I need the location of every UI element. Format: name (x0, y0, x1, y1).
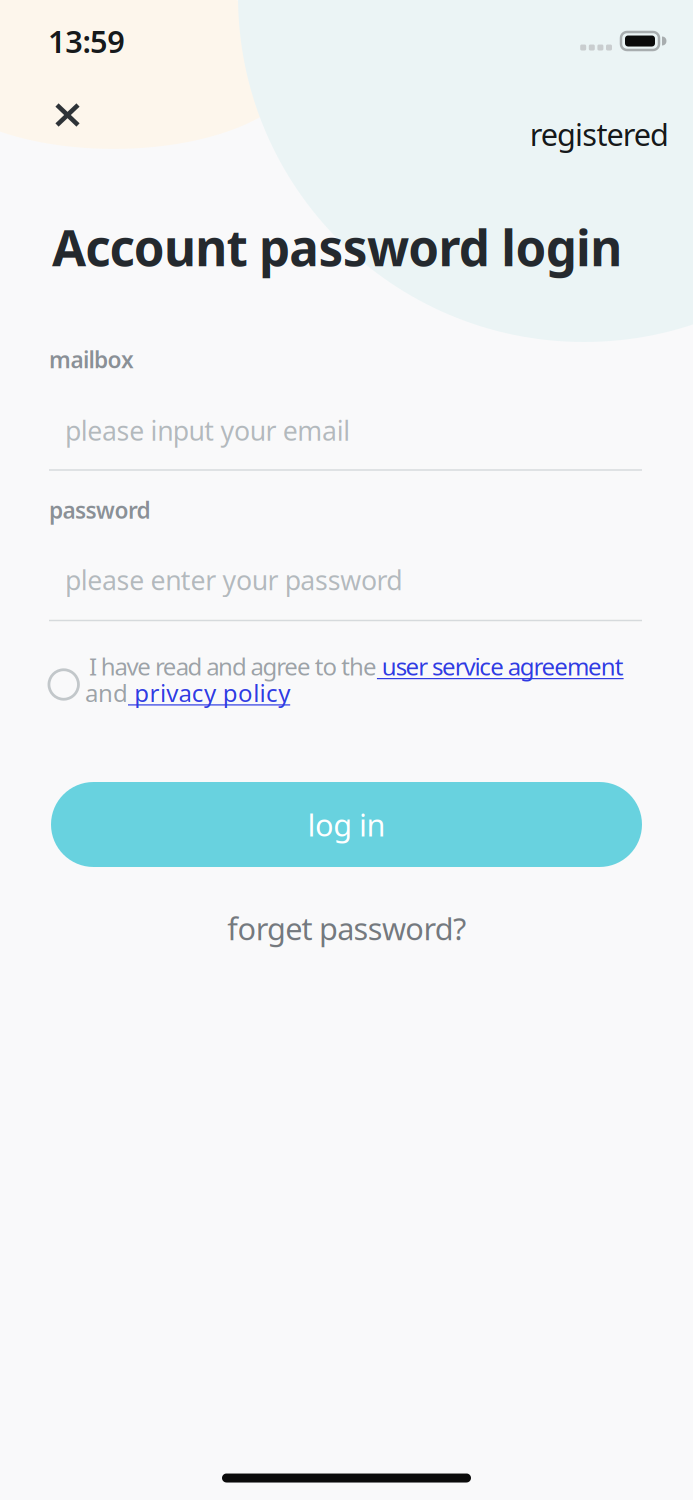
staticText: forget password? (227, 908, 466, 949)
staticText: please enter your password (65, 562, 402, 598)
staticText: registered (530, 114, 669, 154)
button[interactable]: log in (51, 782, 642, 867)
staticText: 13:59 (48, 21, 125, 61)
staticText: I have read and agree to the (89, 650, 377, 682)
staticText: Account password login (52, 214, 622, 280)
button[interactable]: privacy policy (128, 677, 290, 709)
button[interactable]: registered (530, 114, 669, 154)
staticText: mailbox (49, 344, 134, 374)
button[interactable]: password — please enter your password (49, 526, 642, 621)
staticText: privacy policy (128, 677, 290, 709)
staticText: please input your email (65, 413, 350, 448)
staticText: log in (307, 804, 385, 845)
button[interactable]: mailbox — please input your email (49, 376, 642, 471)
button[interactable]: Close (51, 99, 84, 131)
button[interactable]: Agree to terms (49, 670, 78, 699)
staticText: and (85, 677, 128, 709)
button[interactable]: forget password? (227, 908, 466, 949)
staticText: user service agreement (377, 650, 624, 682)
button[interactable]: user service agreement (377, 650, 624, 682)
staticText: password (49, 495, 150, 525)
